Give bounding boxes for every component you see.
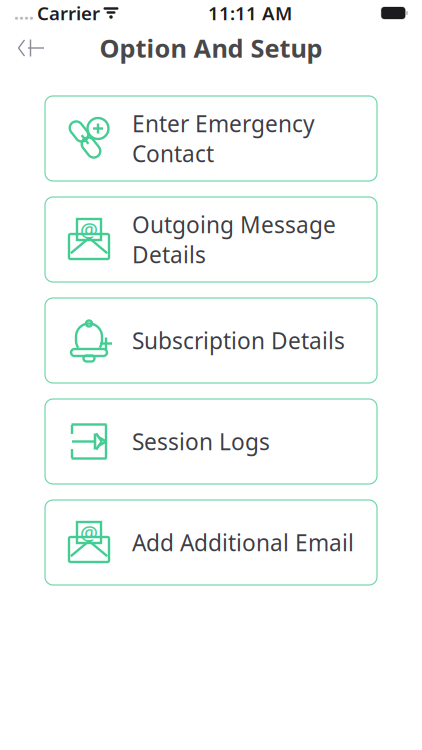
button[interactable]: @ — [45, 197, 377, 282]
staticText: 11:11 AM — [208, 1, 292, 25]
staticText: Subscription Details — [132, 325, 345, 355]
button[interactable]: @ — [45, 500, 377, 585]
button[interactable]: Subscription Details — [45, 298, 377, 383]
staticText: Enter Emergency Contact — [132, 108, 315, 169]
staticText: @ — [80, 519, 98, 546]
button[interactable]: Enter Emergency Contact — [45, 96, 377, 181]
staticText: @ — [80, 216, 98, 243]
staticText: Option And Setup — [99, 31, 322, 65]
staticText: Carrier — [37, 1, 100, 25]
staticText: .... — [14, 1, 34, 24]
staticText: Add Additional Email — [132, 527, 354, 557]
button[interactable]: Session Logs — [45, 399, 377, 484]
button[interactable]: Back — [8, 31, 52, 65]
staticText: Outgoing Message Details — [132, 209, 336, 270]
staticText: Session Logs — [132, 426, 270, 456]
